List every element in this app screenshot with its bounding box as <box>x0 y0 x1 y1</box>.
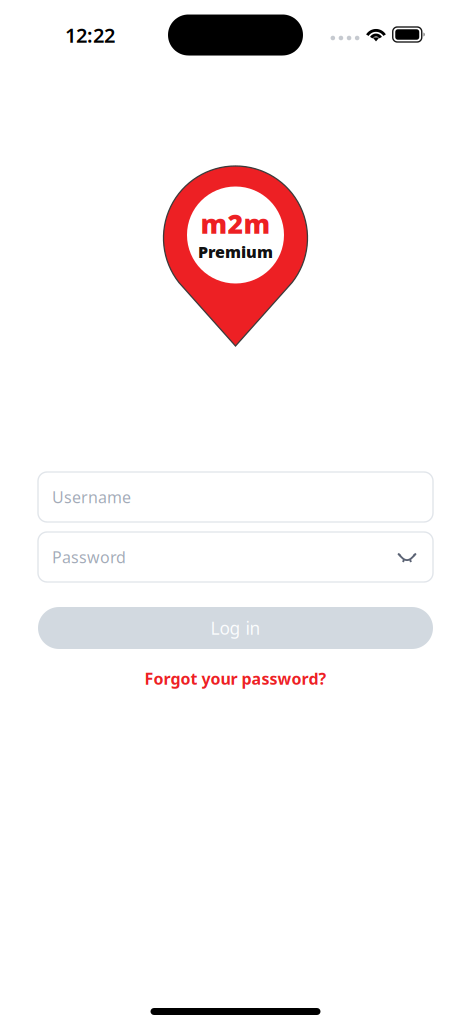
staticText: m2m <box>200 206 270 241</box>
staticText: Username <box>52 486 131 508</box>
button[interactable]: Password <box>38 532 433 582</box>
staticText: Premium <box>198 241 273 262</box>
staticText: Forgot your password? <box>144 668 326 689</box>
staticText: Log in <box>210 616 260 639</box>
staticText: Password <box>52 546 126 568</box>
button[interactable]: Username <box>38 472 433 522</box>
staticText: 12:22 <box>65 22 115 48</box>
button[interactable]: Forgot your password? <box>134 663 336 694</box>
button[interactable]: Show password <box>399 540 433 574</box>
button[interactable]: Log in <box>38 607 433 649</box>
